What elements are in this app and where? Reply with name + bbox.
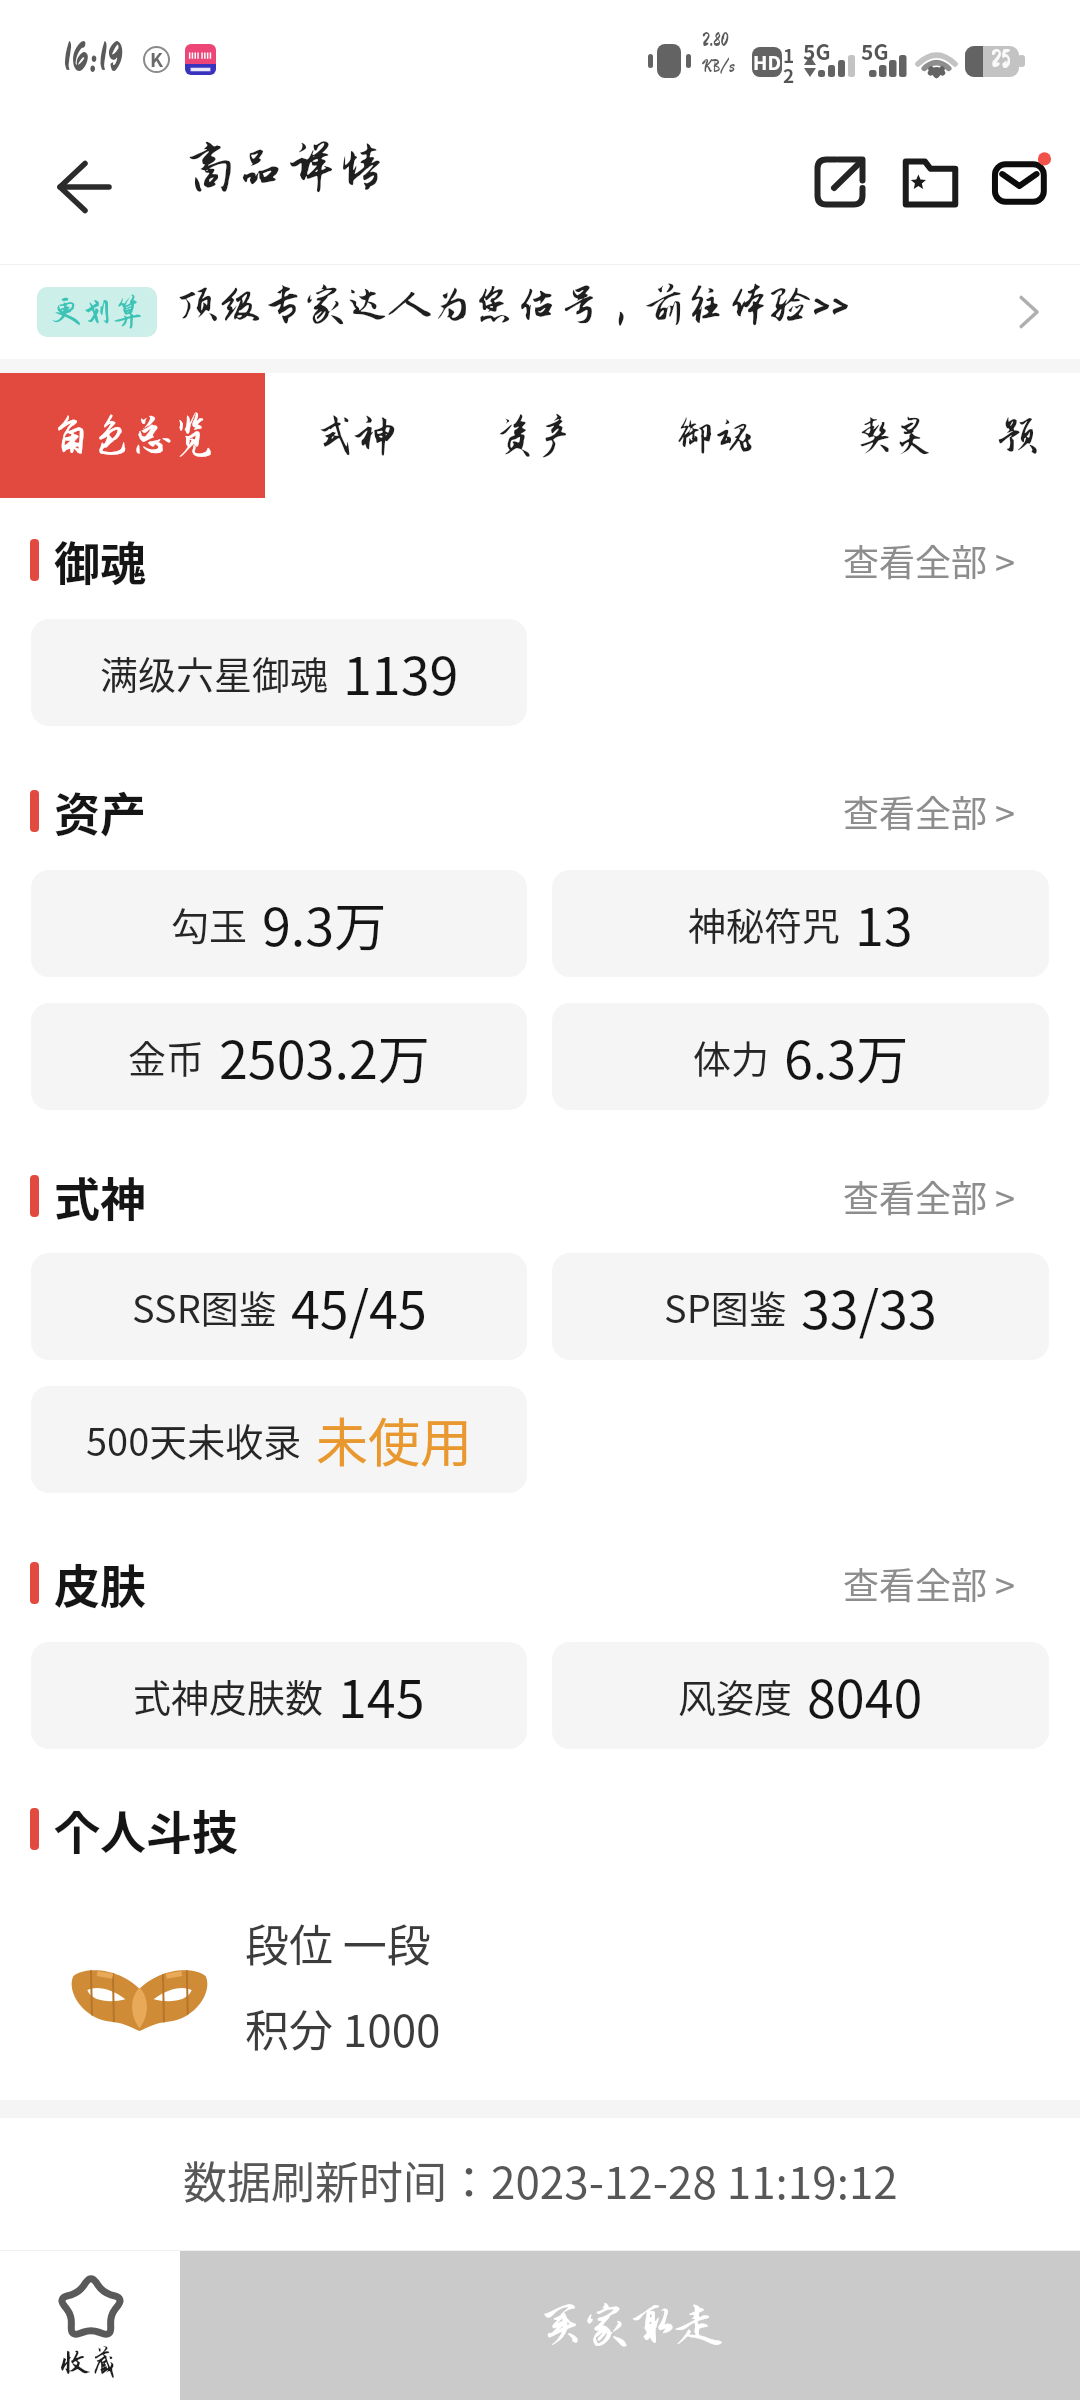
staticText: SP图鉴 [664,1279,787,1334]
button[interactable]: My favorites [894,146,966,218]
staticText: 更划算 [51,295,143,329]
staticText: 契灵 [855,414,935,458]
button[interactable]: 式神 [265,373,445,498]
button[interactable]: SP图鉴 [552,1253,1049,1360]
staticText: HD [753,48,781,76]
staticText: 御魂 [54,527,146,594]
staticText: 式神 [315,414,395,458]
staticText: 买家取走 [538,2300,722,2351]
button[interactable]: 神秘符咒 [552,870,1049,977]
button[interactable]: 买家取走 [180,2251,1080,2400]
staticText: 顶级专家达人为您估号，前往体验>> [177,282,850,329]
staticText: 500天未收录 [86,1412,302,1467]
staticText: 御魂 [675,414,755,458]
button[interactable]: Messages [984,142,1064,222]
button[interactable]: 勾玉 [31,870,527,977]
button[interactable]: 收藏 [0,2251,180,2400]
staticText: 9.3万 [262,886,387,961]
staticText: 资产 [54,778,146,845]
staticText: 33/33 [801,1269,937,1344]
button[interactable]: 500天未收录 [31,1386,527,1493]
staticText: 段位 一段 [245,1911,431,1975]
staticText: 满级六星御魂 [100,645,329,700]
staticText: 2 [783,61,795,89]
staticText: 数据刷新时间：2023-12-28 11:19:12 [183,2148,898,2212]
button[interactable]: 契灵 [805,373,985,498]
button[interactable]: 查看全部 > [837,528,1022,592]
button[interactable]: 满级六星御魂 [31,619,527,726]
staticText: 5G [861,36,889,66]
button[interactable]: 查看全部 > [837,1164,1022,1228]
button[interactable]: 角色总览 [0,373,265,498]
staticText: 收藏 [61,2347,119,2379]
staticText: 勾玉 [171,896,248,951]
button[interactable]: 更划算 [0,265,1080,359]
staticText: 式神皮肤数 [133,1668,324,1723]
staticText: 角色总览 [50,413,216,459]
staticText: 1139 [343,635,459,710]
staticText: 查看全部 > [843,1557,1016,1609]
staticText: 25 [991,46,1011,72]
button[interactable]: Back [40,137,128,237]
staticText: K [150,45,164,72]
staticText: 13 [855,886,913,961]
staticText: 未使用 [316,1402,473,1477]
staticText: KB/s [702,57,735,75]
button[interactable]: 御魂 [625,373,805,498]
staticText: 预 [998,414,1038,458]
staticText: 资产 [495,414,575,458]
staticText: 积分 1000 [245,1996,441,2060]
staticText: 查看全部 > [843,534,1016,586]
button[interactable]: 预 [985,373,1080,498]
staticText: 风姿度 [678,1668,793,1723]
staticText: SSR图鉴 [132,1279,277,1334]
staticText: 145 [338,1658,425,1733]
button[interactable]: 体力 [552,1003,1049,1110]
staticText: 商品详情 [185,140,387,196]
staticText: 1 [783,41,795,69]
button[interactable]: 式神皮肤数 [31,1642,527,1749]
staticText: 2.80 [702,29,729,49]
staticText: 查看全部 > [843,1170,1016,1222]
staticText: 2503.2万 [219,1019,430,1094]
staticText: 6.3万 [784,1019,909,1094]
button[interactable]: 风姿度 [552,1642,1049,1749]
button[interactable]: 金币 [31,1003,527,1110]
staticText: 8040 [807,1658,923,1733]
staticText: 查看全部 > [843,785,1016,837]
staticText: 5G [803,36,831,66]
button[interactable]: 资产 [445,373,625,498]
button[interactable]: SSR图鉴 [31,1253,527,1360]
staticText: 皮肤 [54,1550,146,1617]
staticText: 16:19 [63,36,123,78]
staticText: 体力 [693,1029,770,1084]
button[interactable]: 查看全部 > [837,1551,1022,1615]
staticText: 45/45 [291,1269,427,1344]
staticText: 金币 [128,1029,205,1084]
staticText: 个人斗技 [54,1796,238,1863]
button[interactable]: 查看全部 > [837,779,1022,843]
staticText: 神秘符咒 [688,896,841,951]
staticText: 式神 [54,1163,146,1230]
button[interactable]: Share [804,146,876,218]
